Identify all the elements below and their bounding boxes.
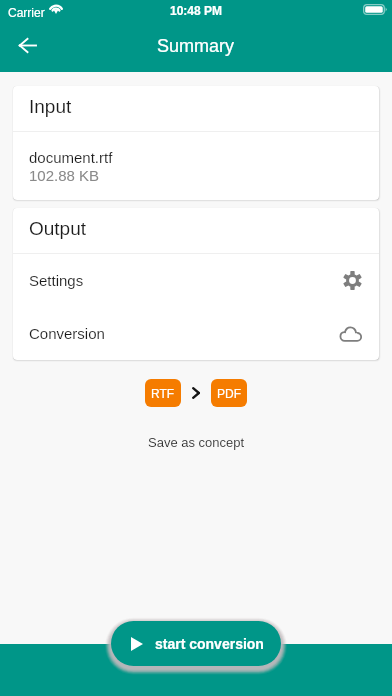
staticText: document.rtf [29,149,113,166]
other: Conversion [340,326,362,342]
staticText: Input [29,96,72,117]
staticText: 102.88 KB [29,167,100,184]
staticText: PDF [217,387,241,400]
button[interactable]: Save as concept [140,431,253,454]
button[interactable]: PDF [211,379,247,407]
staticText: Save as concept [148,435,245,450]
staticText: 10:48 PM [170,4,223,17]
other: Settings [343,271,362,290]
button[interactable]: start conversion [111,621,281,666]
staticText: Output [29,218,87,239]
staticText: Conversion [29,325,105,342]
staticText: start conversion [155,636,264,652]
staticText: Settings [29,272,84,289]
button[interactable]: Back [6,27,48,69]
button[interactable]: RTF [145,379,181,407]
staticText: Carrier [8,6,45,19]
staticText: Summary [157,36,235,56]
button[interactable]: Conversion [13,307,379,360]
staticText: RTF [151,387,175,400]
button[interactable]: Settings [13,254,379,307]
